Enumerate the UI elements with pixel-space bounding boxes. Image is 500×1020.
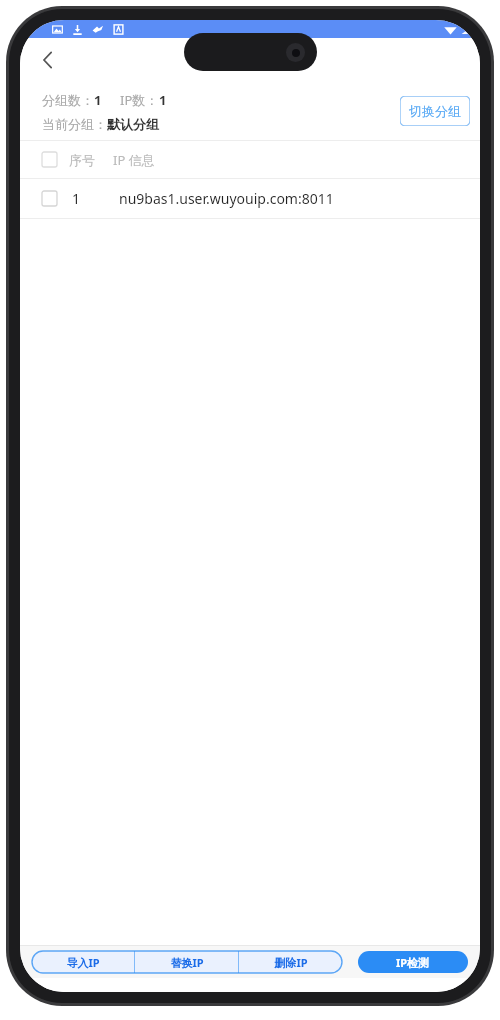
staticText: 替换IP: [170, 955, 204, 970]
staticText: 1: [159, 91, 167, 109]
button[interactable]: 删除IP: [239, 951, 342, 973]
staticText: 序号: [69, 152, 95, 168]
button[interactable]: Back: [28, 40, 68, 80]
staticText: 默认分组: [107, 116, 159, 132]
staticText: IP数：: [120, 91, 159, 109]
staticText: 分组数：: [42, 92, 94, 108]
staticText: nu9bas1.user.wuyouip.com:8011: [119, 189, 334, 208]
button[interactable]: 切换分组: [400, 96, 470, 126]
staticText: 删除IP: [274, 955, 308, 970]
button[interactable]: Select: [20, 179, 480, 218]
button[interactable]: 替换IP: [135, 951, 238, 973]
button[interactable]: 导入IP: [32, 951, 134, 973]
staticText: 1: [72, 189, 81, 208]
button[interactable]: IP检测: [358, 951, 468, 973]
button[interactable]: Select: [42, 191, 57, 206]
staticText: 导入IP: [66, 955, 100, 970]
button[interactable]: Select: [42, 152, 57, 167]
staticText: IP 信息: [113, 151, 155, 169]
staticText: 当前分组：: [42, 116, 107, 132]
staticText: IP检测: [396, 955, 430, 970]
staticText: 切换分组: [409, 103, 461, 119]
staticText: 1: [94, 91, 102, 109]
